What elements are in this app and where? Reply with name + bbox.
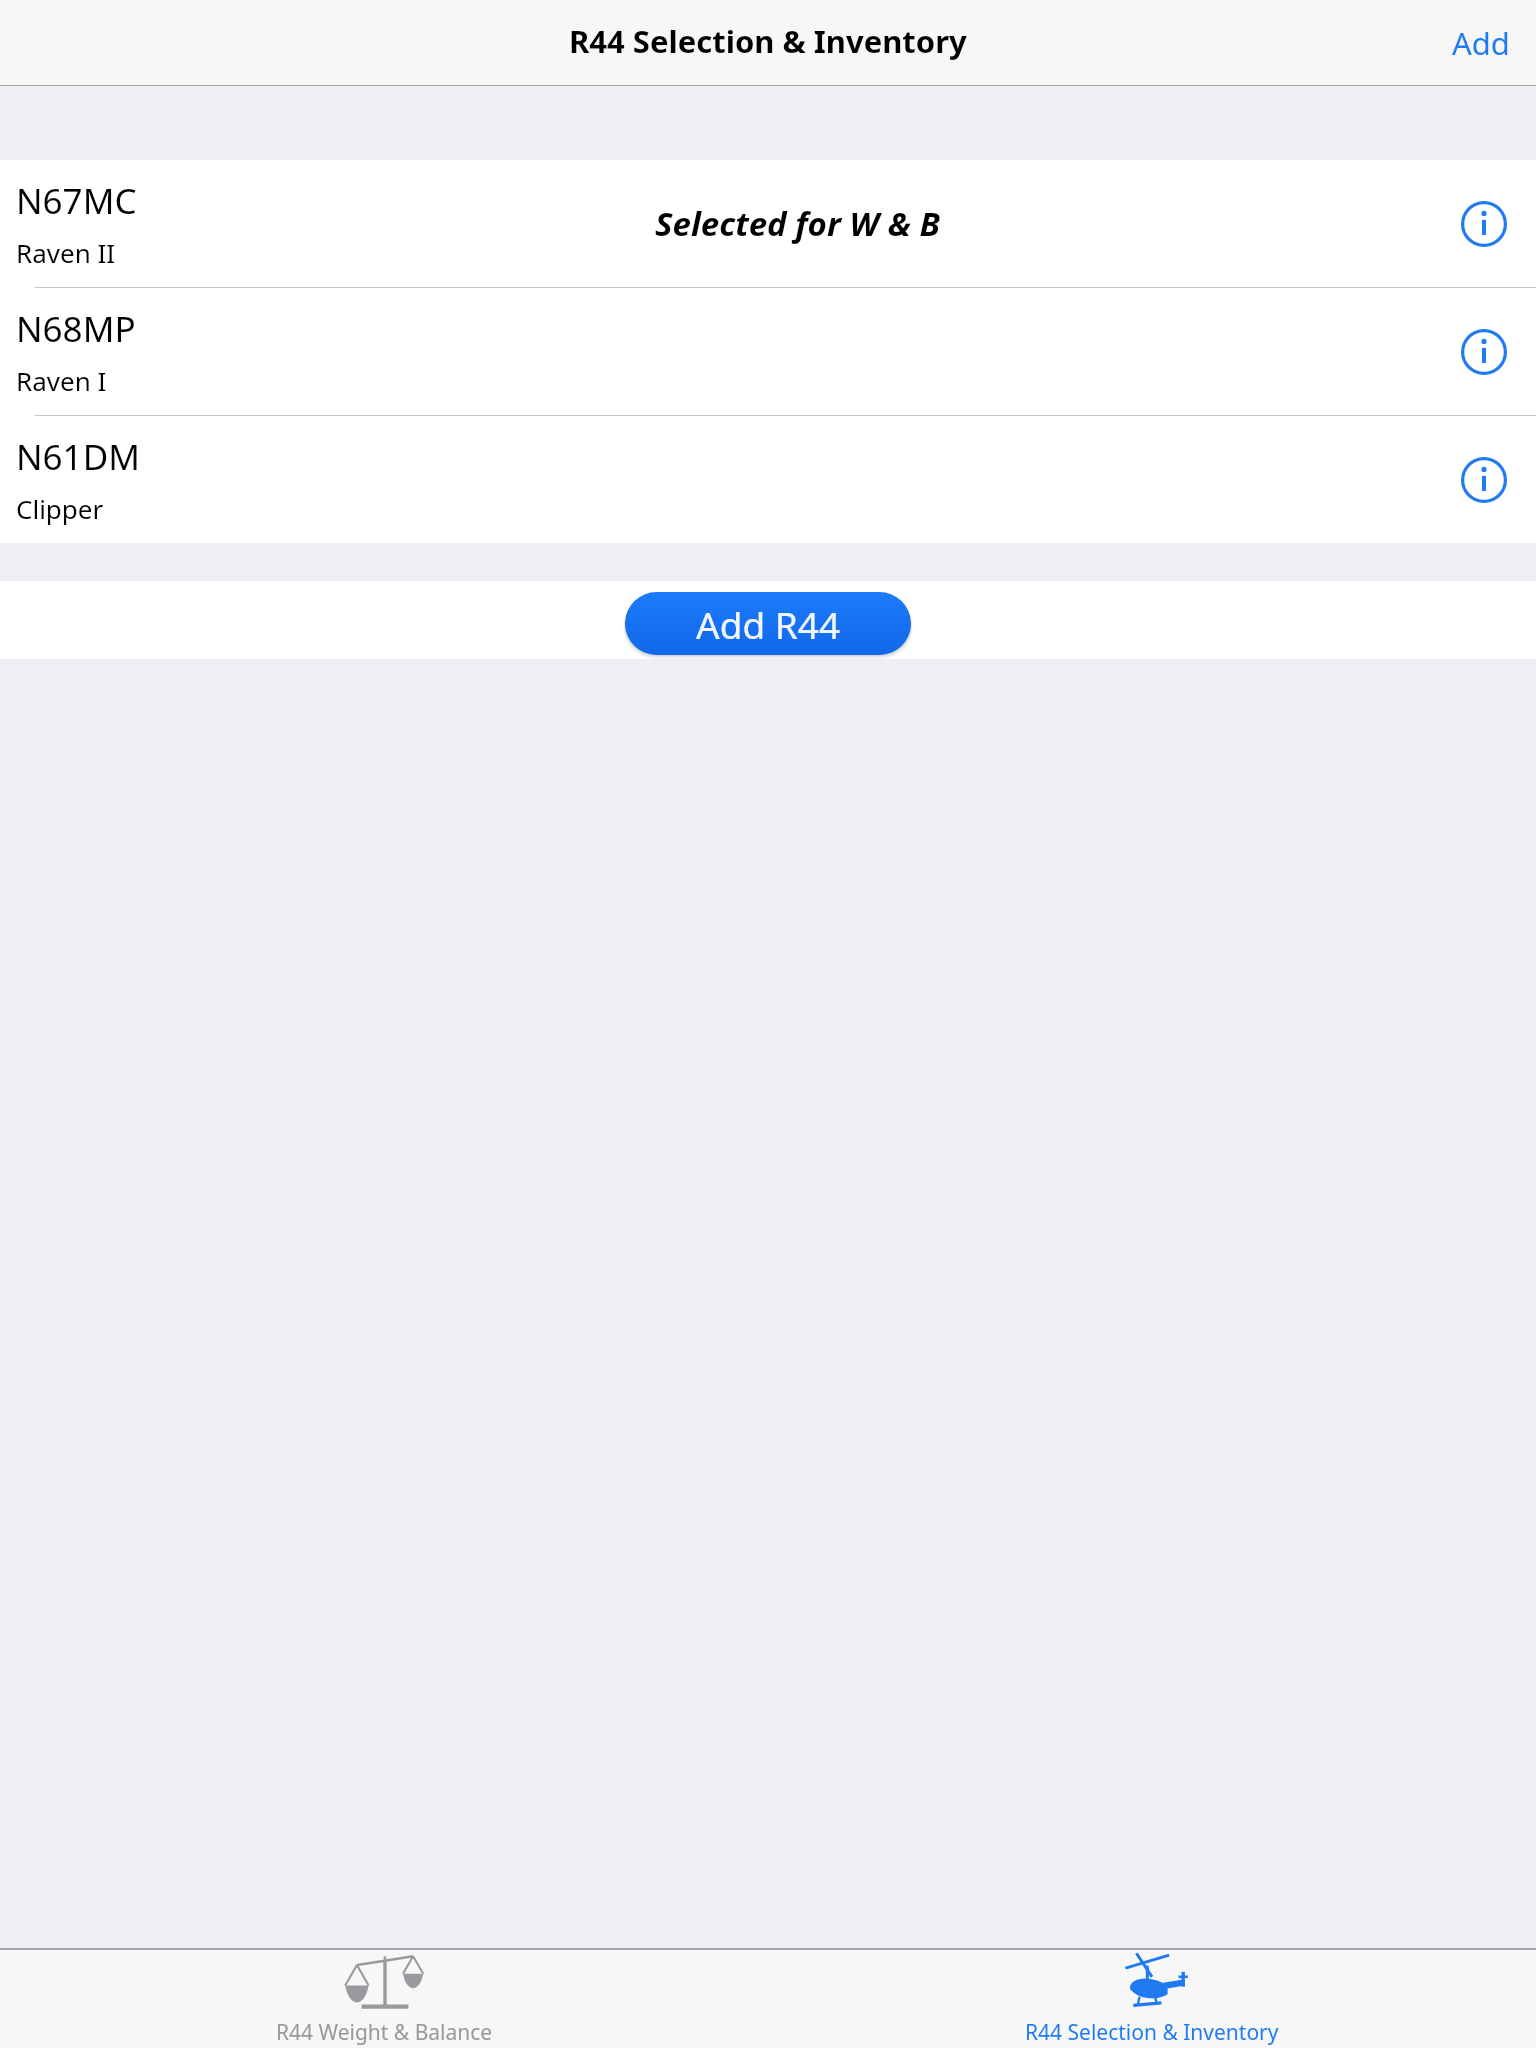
staticText: Clipper (16, 491, 104, 526)
staticText: Selected for W & B (655, 201, 940, 246)
staticText: Raven II (16, 235, 116, 270)
button[interactable]: More info about N68MP (1448, 316, 1520, 388)
button[interactable]: N68MP (0, 288, 1536, 415)
button[interactable]: Add (1426, 8, 1536, 78)
button[interactable]: More info about N61DM (1448, 444, 1520, 516)
staticText: Raven I (16, 363, 107, 398)
staticText: N67MC (16, 177, 137, 225)
staticText: N61DM (16, 433, 140, 481)
button[interactable]: N61DM (0, 416, 1536, 543)
staticText: Add R44 (696, 599, 841, 649)
button[interactable]: More info about N67MC (1448, 188, 1520, 260)
button[interactable]: R44 Weight & Balance (0, 1950, 768, 2048)
staticText: Add (1452, 22, 1510, 64)
button[interactable]: Add R44 (625, 592, 911, 655)
staticText: R44 Weight & Balance (276, 2018, 493, 2047)
staticText: N68MP (16, 305, 136, 353)
button[interactable]: N67MC (0, 160, 1536, 287)
staticText: R44 Selection & Inventory (569, 20, 967, 62)
button[interactable]: R44 Selection & Inventory (768, 1950, 1536, 2048)
staticText: R44 Selection & Inventory (1025, 2018, 1279, 2047)
